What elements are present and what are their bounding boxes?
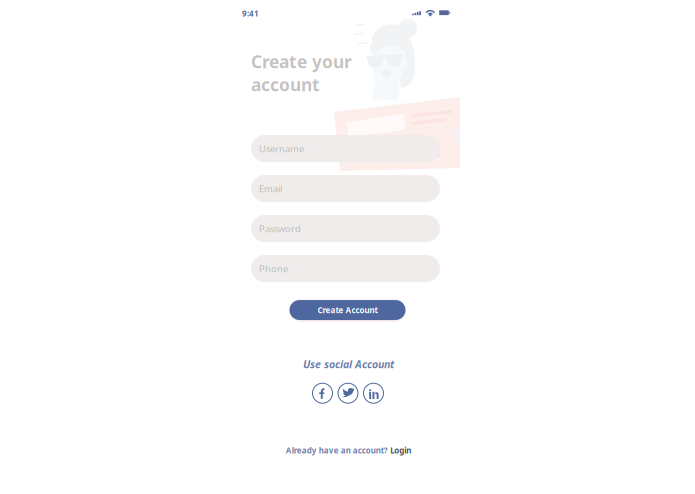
staticText: Email: [259, 182, 282, 195]
button[interactable]: Username: [251, 135, 440, 162]
button[interactable]: Already have an account?: [280, 445, 411, 456]
button[interactable]: Email: [251, 175, 440, 202]
staticText: 9:41: [242, 8, 259, 19]
staticText: Use social Account: [303, 357, 394, 371]
button[interactable]: Password: [251, 215, 440, 242]
staticText: Username: [259, 142, 304, 155]
button[interactable]: Sign up with Facebook: [312, 383, 332, 403]
button[interactable]: Phone: [251, 255, 440, 282]
staticText: Create your account: [251, 50, 352, 96]
staticText: Login: [390, 445, 411, 456]
staticText: Phone: [259, 262, 288, 275]
staticText: Create Account: [317, 305, 377, 315]
staticText: Already have an account?: [286, 445, 388, 456]
button[interactable]: Sign up with LinkedIn: [363, 383, 383, 403]
button[interactable]: Create Account: [285, 300, 405, 320]
button[interactable]: Sign up with Twitter: [338, 383, 358, 403]
staticText: Password: [259, 222, 301, 235]
